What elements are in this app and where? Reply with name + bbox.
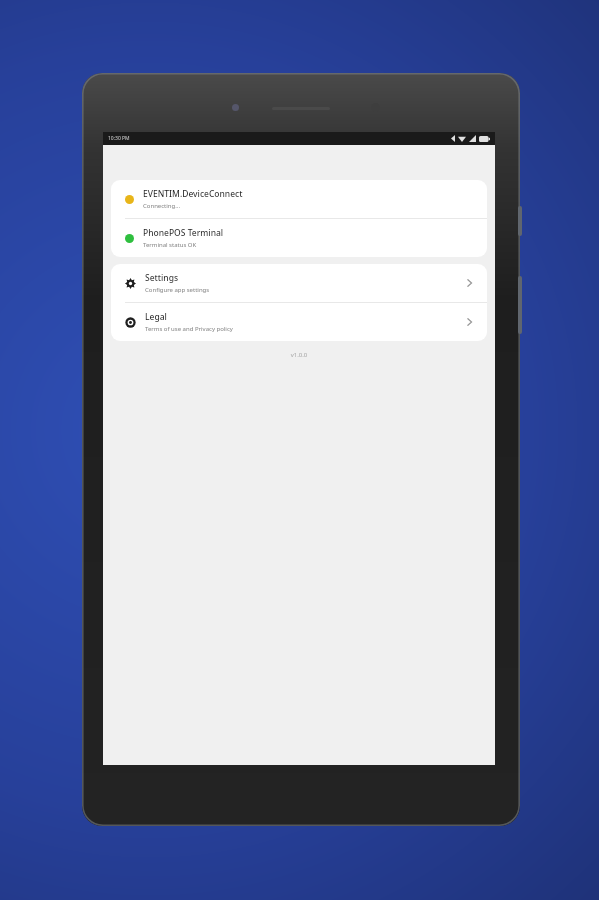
other: Settings	[125, 278, 136, 289]
staticText: PhonePOS Terminal	[143, 227, 224, 239]
staticText: v1.0.0	[103, 351, 495, 359]
staticText: 10:30 PM	[108, 135, 130, 142]
staticText: Terminal status OK	[143, 241, 197, 249]
staticText: Settings	[145, 272, 179, 284]
button[interactable]: Settings	[111, 264, 487, 302]
button[interactable]: PhonePOS Terminal	[111, 219, 487, 257]
staticText: Terms of use and Privacy policy	[145, 325, 233, 333]
staticText: EVENTIM.DeviceConnect	[143, 188, 243, 200]
button[interactable]: EVENTIM.DeviceConnect	[111, 180, 487, 218]
staticText: Legal	[145, 311, 167, 323]
staticText: Configure app settings	[145, 286, 210, 294]
other: Legal	[125, 317, 136, 328]
button[interactable]: Legal	[111, 303, 487, 341]
staticText: Connecting...	[143, 202, 181, 210]
